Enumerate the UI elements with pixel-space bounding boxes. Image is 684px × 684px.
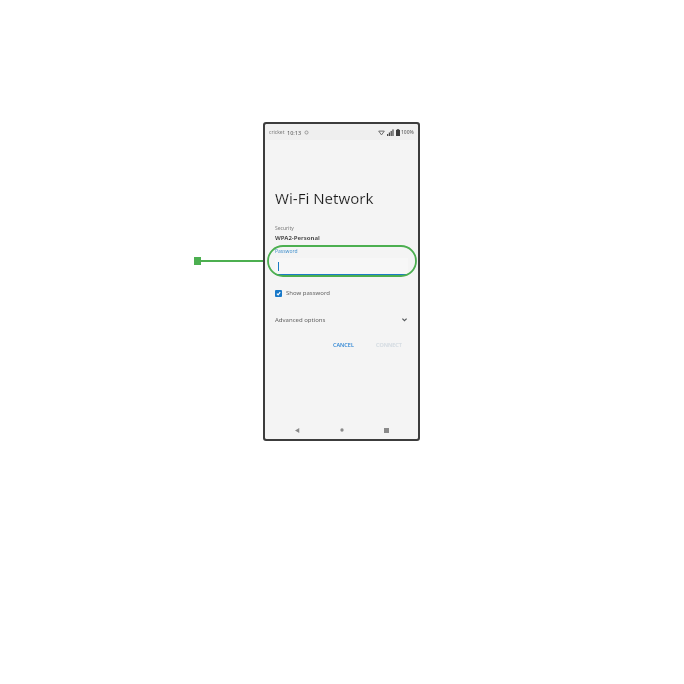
staticText: Advanced options — [275, 316, 326, 324]
staticText: 100% — [401, 129, 414, 136]
staticText: Password — [275, 248, 298, 255]
staticText: Security — [275, 225, 294, 232]
button[interactable]: CONNECT — [370, 338, 408, 351]
staticText: cricket — [269, 129, 285, 136]
button[interactable]: Home — [330, 421, 354, 439]
staticText: Wi-Fi Network — [275, 188, 374, 208]
button[interactable] — [275, 258, 408, 275]
staticText: Show password — [286, 289, 330, 297]
button[interactable]: Advanced options — [275, 313, 408, 326]
button[interactable]: Show password — [275, 289, 408, 297]
staticText: CANCEL — [333, 341, 354, 348]
staticText: WPA2-Personal — [275, 234, 320, 242]
button[interactable]: Recent apps — [374, 421, 398, 439]
button[interactable]: Back — [285, 421, 309, 439]
button[interactable]: CANCEL — [327, 338, 360, 351]
staticText: CONNECT — [376, 341, 402, 348]
staticText: 10:13 — [287, 129, 302, 136]
